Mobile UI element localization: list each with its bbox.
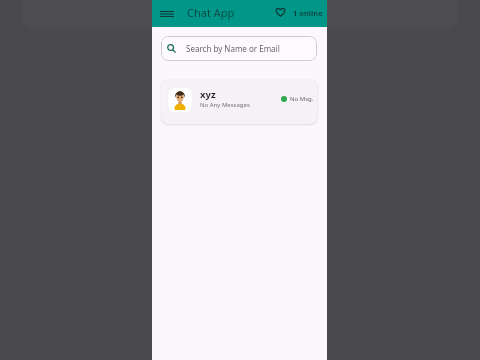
staticText: xyz <box>200 88 216 101</box>
button[interactable]: Menu <box>158 5 175 22</box>
staticText: Search by Name or Email <box>186 43 280 54</box>
button[interactable]: xyz <box>161 79 317 124</box>
button[interactable]: Favorites <box>273 5 287 19</box>
staticText: No Any Messages <box>200 101 250 109</box>
button[interactable]: Search by Name or Email <box>161 36 317 61</box>
staticText: Chat App <box>187 5 235 20</box>
staticText: 1 online <box>293 8 323 18</box>
staticText: No Msg. <box>290 95 314 103</box>
